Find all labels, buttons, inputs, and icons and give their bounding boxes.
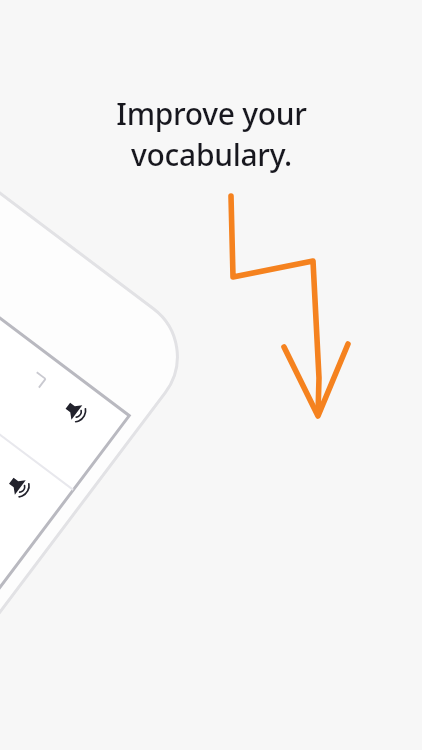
staticText: vocabulary. bbox=[131, 134, 292, 175]
staticText: Improve your bbox=[116, 93, 307, 134]
other: Vocabulary app screenshot bbox=[0, 0, 422, 750]
button[interactable]: Improve your bbox=[0, 93, 422, 175]
